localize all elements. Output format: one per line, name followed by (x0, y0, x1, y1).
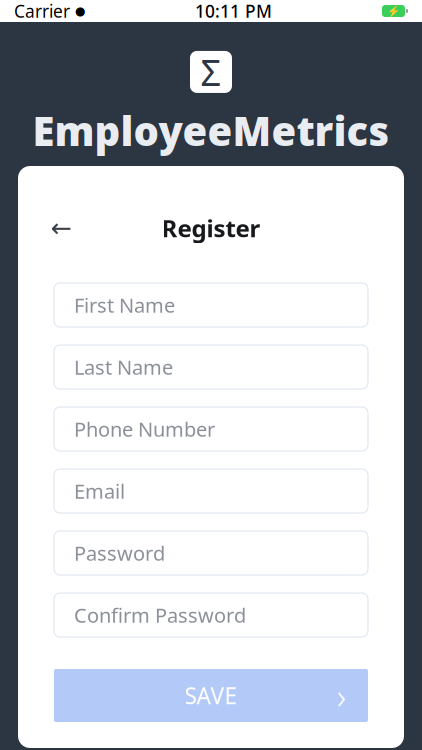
staticText: Password (74, 540, 165, 566)
staticText: Phone Number (74, 416, 215, 442)
button[interactable]: Password (54, 531, 368, 575)
button[interactable]: Confirm Password (54, 593, 368, 637)
staticText: 10:11 PM (195, 0, 272, 22)
button[interactable]: Phone Number (54, 407, 368, 451)
staticText: Σ (200, 48, 221, 96)
staticText: Email (74, 478, 125, 504)
staticText: ⚡ (387, 5, 400, 17)
staticText: Confirm Password (74, 602, 246, 628)
staticText: ← (50, 214, 71, 242)
button[interactable]: SAVE (54, 669, 368, 722)
staticText: Carrier (14, 0, 70, 22)
button[interactable]: Back (43, 210, 79, 246)
staticText: Register (161, 212, 260, 244)
staticText: Last Name (74, 354, 173, 380)
button[interactable]: First Name (54, 283, 368, 327)
staticText: SAVE (184, 680, 237, 710)
button[interactable]: Last Name (54, 345, 368, 389)
staticText: › (337, 672, 346, 718)
staticText: First Name (74, 292, 175, 318)
staticText: ● (75, 4, 85, 18)
button[interactable]: Email (54, 469, 368, 513)
staticText: EmployeeMetrics (32, 104, 389, 157)
